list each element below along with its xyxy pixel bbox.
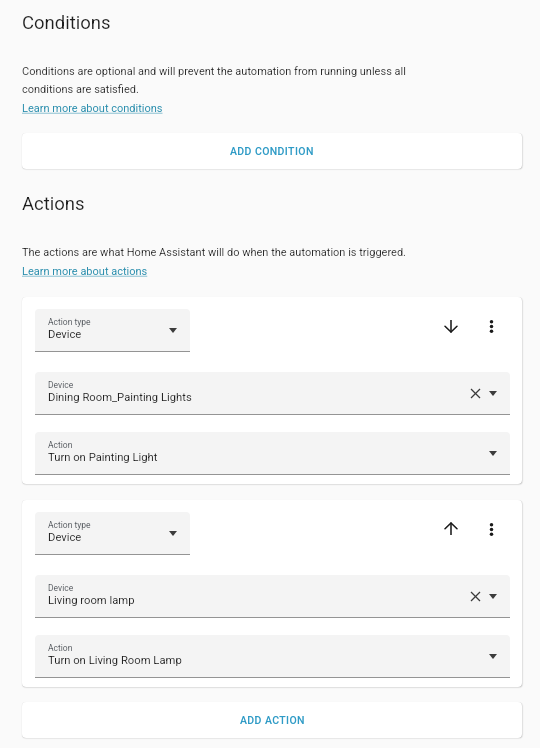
button[interactable]: Device	[35, 372, 510, 415]
button[interactable]: Learn more about conditions	[22, 102, 163, 115]
staticText: Conditions	[22, 12, 111, 34]
button[interactable]: Action type	[35, 512, 190, 555]
button[interactable]: Move up	[433, 511, 469, 547]
staticText: Action type	[48, 317, 91, 327]
staticText: Action	[48, 643, 73, 653]
staticText: Turn on Living Room Lamp	[48, 654, 182, 667]
button[interactable]: More options	[473, 308, 509, 344]
staticText: Device	[48, 328, 82, 341]
staticText: Living room lamp	[48, 594, 135, 607]
staticText: Device	[48, 380, 74, 390]
staticText: Action type	[48, 520, 91, 530]
staticText: Device	[48, 531, 82, 544]
staticText: Conditions are optional and will prevent…	[22, 65, 420, 96]
staticText: Device	[48, 583, 74, 593]
button[interactable]: ADD CONDITION	[22, 133, 522, 169]
button[interactable]: ADD ACTION	[22, 702, 522, 738]
staticText: Dining Room_Painting Lights	[48, 391, 192, 404]
button[interactable]: Move down	[433, 308, 469, 344]
staticText: Turn on Painting Light	[48, 451, 158, 464]
staticText: ADD CONDITION	[230, 145, 314, 157]
staticText: Action	[48, 440, 73, 450]
button[interactable]: Action	[35, 432, 510, 475]
staticText: ADD ACTION	[240, 714, 305, 726]
button[interactable]: Action	[35, 635, 510, 678]
staticText: Actions	[22, 193, 85, 215]
button[interactable]: More options	[473, 511, 509, 547]
button[interactable]: Learn more about actions	[22, 265, 148, 278]
button[interactable]: Action type	[35, 309, 190, 352]
staticText: The actions are what Home Assistant will…	[22, 246, 406, 259]
button[interactable]: Device	[35, 575, 510, 618]
